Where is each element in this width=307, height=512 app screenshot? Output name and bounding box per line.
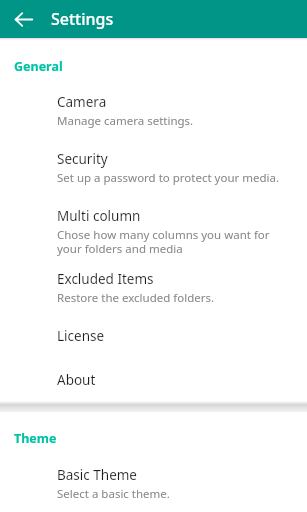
button[interactable]: Basic Theme <box>0 466 307 502</box>
staticText: Settings <box>51 8 114 30</box>
staticText: Multi column <box>57 207 141 225</box>
staticText: Basic Theme <box>57 466 137 484</box>
staticText: Theme <box>14 430 57 447</box>
staticText: Select a basic theme. <box>57 486 170 502</box>
staticText: Manage camera settings. <box>57 113 194 129</box>
staticText: Restore the excluded folders. <box>57 290 215 306</box>
button[interactable]: License <box>0 327 307 345</box>
button[interactable]: About <box>0 371 307 389</box>
staticText: Chose how many columns you want for your… <box>57 227 293 256</box>
button[interactable]: Security <box>0 150 307 186</box>
button[interactable]: Camera <box>0 93 307 129</box>
staticText: Excluded Items <box>57 270 154 288</box>
button[interactable]: Multi column <box>0 207 307 256</box>
button[interactable]: Excluded Items <box>0 270 307 306</box>
button[interactable]: Back <box>7 3 39 35</box>
staticText: About <box>57 371 96 389</box>
staticText: License <box>57 327 105 345</box>
staticText: Security <box>57 150 108 168</box>
staticText: Set up a password to protect your media. <box>57 170 280 186</box>
staticText: General <box>14 58 63 75</box>
staticText: Camera <box>57 93 107 111</box>
